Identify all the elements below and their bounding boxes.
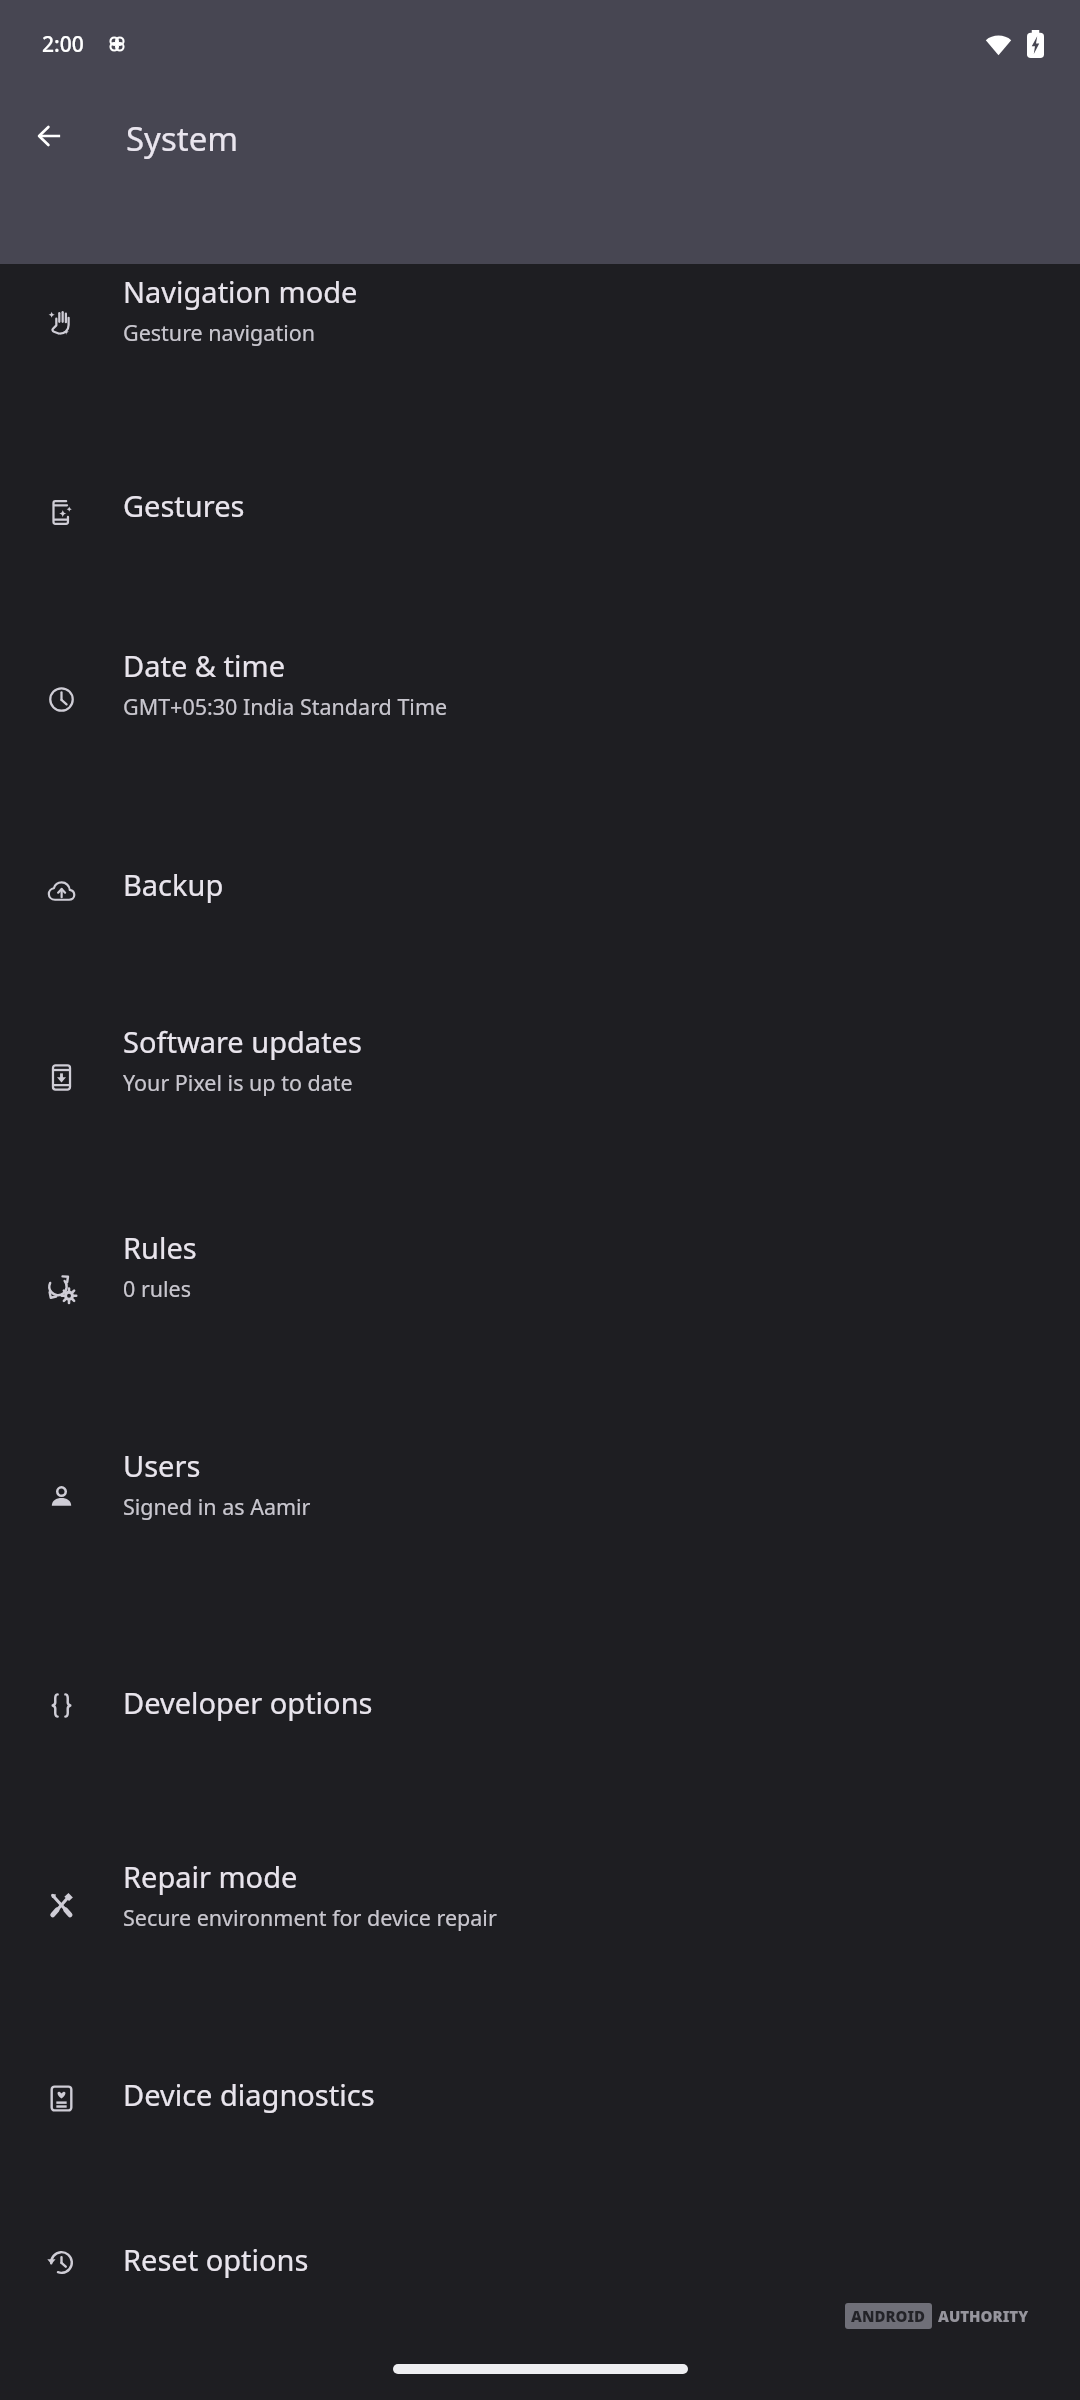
button[interactable]: Software updates	[0, 1019, 1080, 1169]
staticText: 2:00	[42, 30, 84, 59]
staticText: GMT+05:30 India Standard Time	[123, 692, 448, 721]
staticText: Secure environment for device repair	[123, 1903, 497, 1932]
staticText: Software updates	[123, 1022, 362, 1061]
button[interactable]: Repair mode	[0, 1847, 1080, 1997]
staticText: Device diagnostics	[123, 2075, 375, 2114]
staticText: Reset options	[123, 2240, 309, 2279]
staticText: Gestures	[123, 486, 245, 525]
button[interactable]: Developer options	[0, 1647, 1080, 1759]
button[interactable]: Users	[0, 1439, 1080, 1589]
staticText: Navigation mode	[123, 272, 358, 311]
button[interactable]: Reset options	[0, 2204, 1080, 2316]
button[interactable]: Back	[22, 108, 78, 164]
staticText: Gesture navigation	[123, 318, 315, 347]
button[interactable]: Navigation mode	[0, 264, 1080, 414]
button[interactable]: Backup	[0, 833, 1080, 945]
staticText: Date & time	[123, 646, 285, 685]
button[interactable]: Device diagnostics	[0, 2040, 1080, 2152]
button[interactable]: Gestures	[0, 454, 1080, 566]
staticText: 0 rules	[123, 1274, 192, 1303]
staticText: Repair mode	[123, 1857, 298, 1896]
staticText: Rules	[123, 1228, 197, 1267]
staticText: Users	[123, 1446, 201, 1485]
staticText: Backup	[123, 865, 224, 904]
staticText: System	[126, 116, 239, 161]
staticText: Your Pixel is up to date	[123, 1068, 353, 1097]
staticText: ANDROID	[851, 2306, 926, 2326]
staticText: Signed in as Aamir	[123, 1492, 311, 1521]
staticText: Developer options	[123, 1683, 373, 1722]
staticText: AUTHORITY	[938, 2306, 1029, 2326]
button[interactable]: Date & time	[0, 641, 1080, 791]
button[interactable]: Rules	[0, 1230, 1080, 1380]
